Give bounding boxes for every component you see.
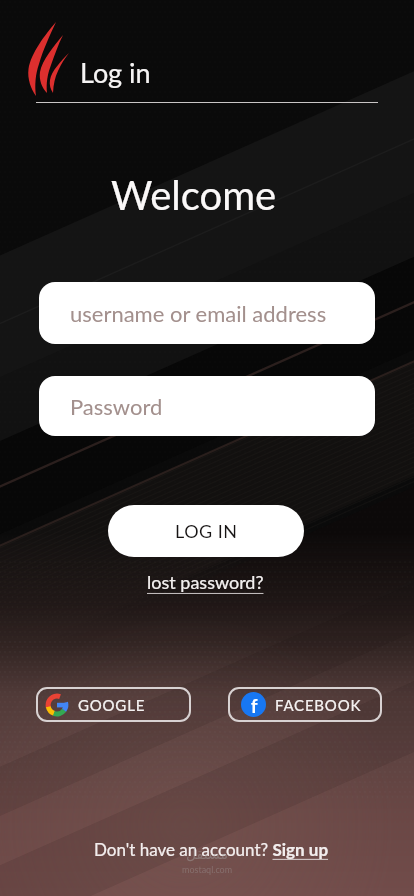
staticText: f [251,695,258,717]
staticText: username or email address [70,300,327,326]
staticText: lost password? [147,571,264,593]
staticText: LOG IN [175,520,238,542]
staticText: GOOGLE [78,696,146,714]
staticText: Don't have an account? Sign up [94,839,329,859]
staticText: FACEBOOK [275,696,362,714]
staticText: Welcome [111,171,277,219]
staticText: مستقل [186,846,228,862]
staticText: Log in [80,56,151,88]
staticText: mostaql.com [182,864,233,875]
staticText: Password [70,393,163,419]
